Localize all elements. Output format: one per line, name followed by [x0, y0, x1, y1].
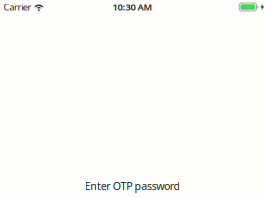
button[interactable]: Enter OTP password	[78, 178, 186, 194]
staticText: Carrier	[4, 1, 31, 13]
staticText: 10:30 AM	[112, 1, 152, 13]
staticText: Enter OTP password	[84, 179, 180, 193]
